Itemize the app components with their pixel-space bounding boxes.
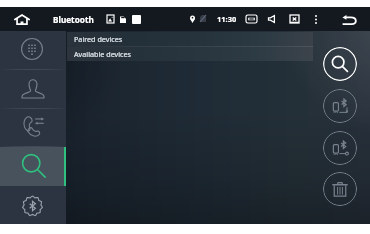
- button[interactable]: Pair new device: [323, 89, 357, 123]
- button[interactable]: Connect device: [323, 131, 357, 165]
- button[interactable]: Bluetooth settings: [0, 187, 66, 226]
- button[interactable]: Back: [334, 8, 363, 30]
- staticText: Bluetooth: [53, 14, 94, 25]
- staticText: 11:30: [217, 14, 237, 24]
- button[interactable]: Paired devices: [67, 32, 313, 46]
- button[interactable]: Available devices: [67, 47, 313, 61]
- staticText: Paired devices: [74, 34, 123, 44]
- button[interactable]: Call log: [0, 108, 66, 147]
- button[interactable]: Search: [323, 47, 357, 81]
- button[interactable]: Search: [0, 147, 66, 186]
- staticText: Available devices: [74, 49, 131, 59]
- button[interactable]: More options: [307, 9, 325, 29]
- button[interactable]: Home: [8, 8, 36, 30]
- button[interactable]: Contacts: [0, 69, 66, 108]
- button[interactable]: Dial pad: [0, 30, 66, 69]
- button[interactable]: Delete: [323, 172, 357, 206]
